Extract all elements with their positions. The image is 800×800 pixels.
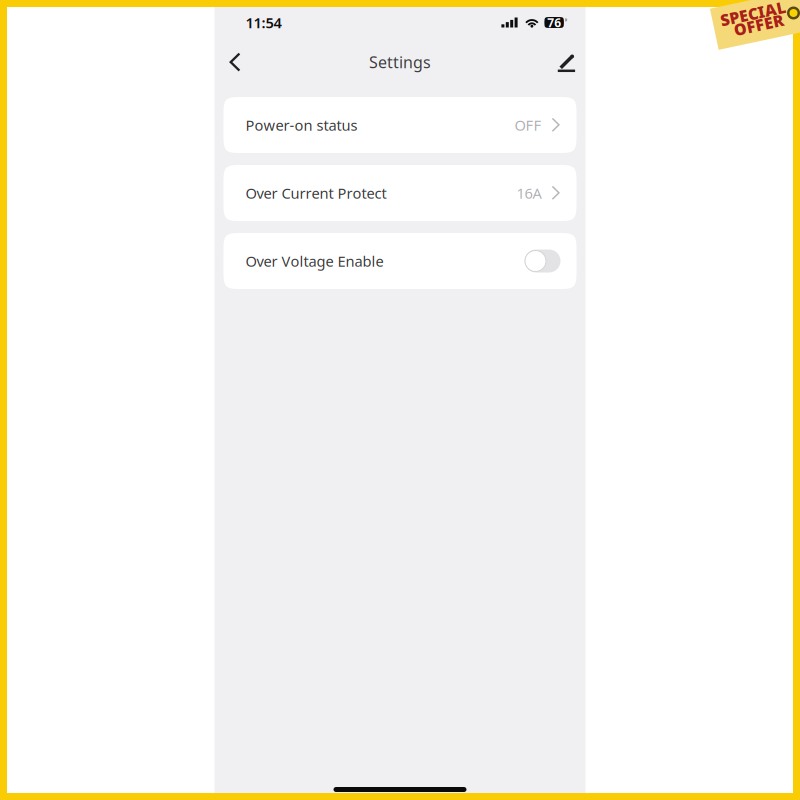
staticText: Over Voltage Enable (245, 251, 383, 271)
staticText: SPECIAL (721, 0, 787, 20)
staticText: Power-on status (245, 115, 357, 135)
staticText: OFFER (732, 11, 783, 32)
staticText: 11:54 (245, 13, 281, 32)
button[interactable]: Edit (541, 44, 576, 80)
staticText: Settings (369, 51, 431, 73)
button[interactable]: Back (229, 44, 263, 80)
button[interactable]: Over Current Protect (223, 165, 576, 221)
button[interactable]: Power-on status (223, 97, 576, 153)
staticText: 76 (547, 14, 561, 30)
staticText: 16A (516, 183, 541, 203)
staticText: OFF (514, 115, 541, 135)
button[interactable]: Over Voltage Enable (223, 233, 576, 289)
staticText: Over Current Protect (245, 183, 386, 203)
